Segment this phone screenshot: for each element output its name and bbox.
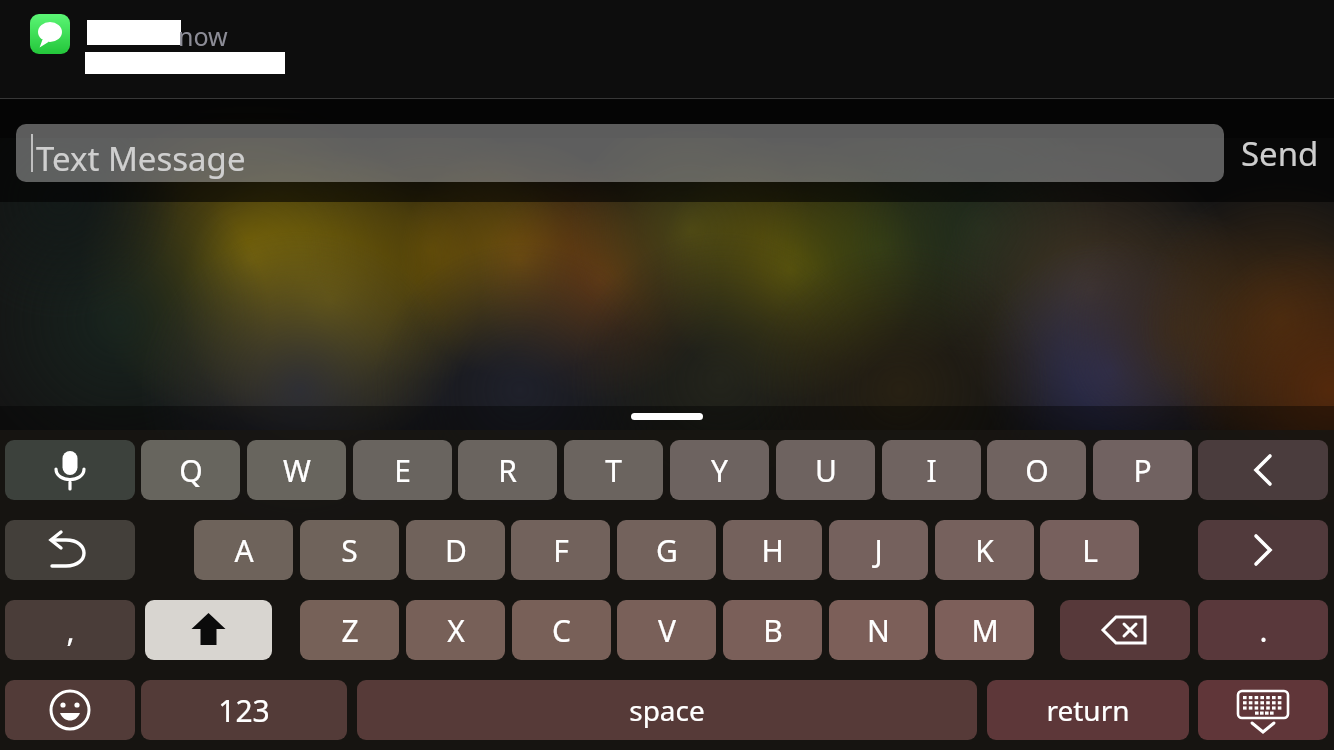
button[interactable]: A xyxy=(194,520,293,580)
button[interactable]: P xyxy=(1093,440,1192,500)
staticText: C xyxy=(552,610,571,651)
staticText: T xyxy=(605,450,622,491)
staticText: K xyxy=(975,530,994,571)
button[interactable]: B xyxy=(723,600,822,660)
button[interactable]: Shift xyxy=(145,600,272,660)
button[interactable]: S xyxy=(300,520,399,580)
staticText: . xyxy=(1259,610,1268,651)
staticText: , xyxy=(66,610,75,651)
staticText: A xyxy=(234,530,254,571)
staticText: Y xyxy=(711,450,728,491)
button[interactable]: W xyxy=(247,440,346,500)
button[interactable]: Hide keyboard xyxy=(1198,680,1328,740)
button[interactable]: 123 xyxy=(141,680,347,740)
button[interactable]: Delete xyxy=(1060,600,1190,660)
button[interactable]: , xyxy=(5,600,135,660)
button[interactable]: H xyxy=(723,520,822,580)
button[interactable]: M xyxy=(935,600,1034,660)
button[interactable]: T xyxy=(564,440,663,500)
button[interactable]: Dictate xyxy=(5,440,135,500)
staticText: Text Message xyxy=(36,136,246,181)
button[interactable]: I xyxy=(882,440,981,500)
button[interactable]: E xyxy=(353,440,452,500)
button[interactable] xyxy=(30,14,70,54)
staticText: 123 xyxy=(218,690,270,731)
staticText: B xyxy=(763,610,783,651)
staticText: space xyxy=(629,691,705,729)
button[interactable]: F xyxy=(511,520,610,580)
staticText: L xyxy=(1082,530,1098,571)
button[interactable]: N xyxy=(829,600,928,660)
staticText: now xyxy=(178,19,228,53)
button[interactable]: Previous xyxy=(1198,440,1328,500)
staticText: N xyxy=(867,610,890,651)
staticText: D xyxy=(445,530,467,571)
staticText: Z xyxy=(341,610,359,651)
button[interactable]: G xyxy=(617,520,716,580)
staticText: Q xyxy=(179,450,203,491)
staticText: S xyxy=(341,530,358,571)
button[interactable]: J xyxy=(829,520,928,580)
button[interactable]: Q xyxy=(141,440,240,500)
staticText: return xyxy=(1046,691,1130,729)
staticText: V xyxy=(658,610,676,651)
staticText: E xyxy=(394,450,411,491)
button[interactable]: return xyxy=(987,680,1189,740)
button[interactable]: U xyxy=(776,440,875,500)
button[interactable]: R xyxy=(458,440,557,500)
staticText: J xyxy=(874,530,883,571)
button[interactable]: Y xyxy=(670,440,769,500)
staticText: M xyxy=(971,610,999,651)
button[interactable]: Next xyxy=(1198,520,1328,580)
button[interactable]: C xyxy=(512,600,611,660)
staticText: Send xyxy=(1241,131,1319,176)
staticText: W xyxy=(283,450,311,491)
staticText: I xyxy=(926,450,937,491)
staticText: H xyxy=(761,530,784,571)
button[interactable]: V xyxy=(617,600,716,660)
staticText: F xyxy=(553,530,569,571)
staticText: X xyxy=(447,610,465,651)
button[interactable]: Undo xyxy=(5,520,135,580)
button[interactable]: L xyxy=(1040,520,1139,580)
staticText: P xyxy=(1133,450,1152,491)
button[interactable]: O xyxy=(987,440,1086,500)
staticText: R xyxy=(498,450,517,491)
button[interactable]: space xyxy=(357,680,977,740)
button[interactable]: D xyxy=(406,520,505,580)
button[interactable] xyxy=(16,124,1224,182)
staticText: G xyxy=(656,530,678,571)
button[interactable]: K xyxy=(935,520,1034,580)
staticText: U xyxy=(815,450,837,491)
button[interactable]: Send xyxy=(1232,124,1328,182)
button[interactable]: Emoji xyxy=(5,680,135,740)
button[interactable]: X xyxy=(406,600,505,660)
button[interactable]: Z xyxy=(300,600,399,660)
button[interactable]: . xyxy=(1198,600,1328,660)
staticText: O xyxy=(1025,450,1049,491)
